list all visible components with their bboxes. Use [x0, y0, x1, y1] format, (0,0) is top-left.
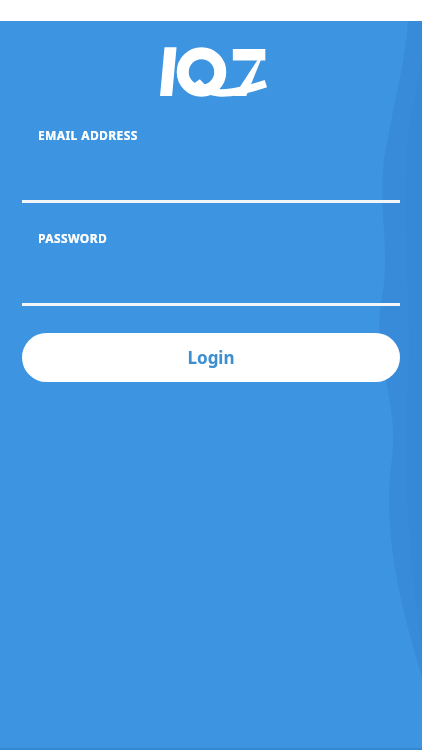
button[interactable]: Login	[22, 333, 400, 382]
staticText: EMAIL ADDRESS	[38, 127, 138, 143]
button[interactable]: EMAIL ADDRESS	[0, 127, 422, 203]
staticText: PASSWORD	[38, 230, 108, 246]
other: IQ7 logo	[155, 44, 267, 100]
staticText: Login	[187, 346, 235, 369]
button[interactable]: PASSWORD	[0, 230, 422, 306]
